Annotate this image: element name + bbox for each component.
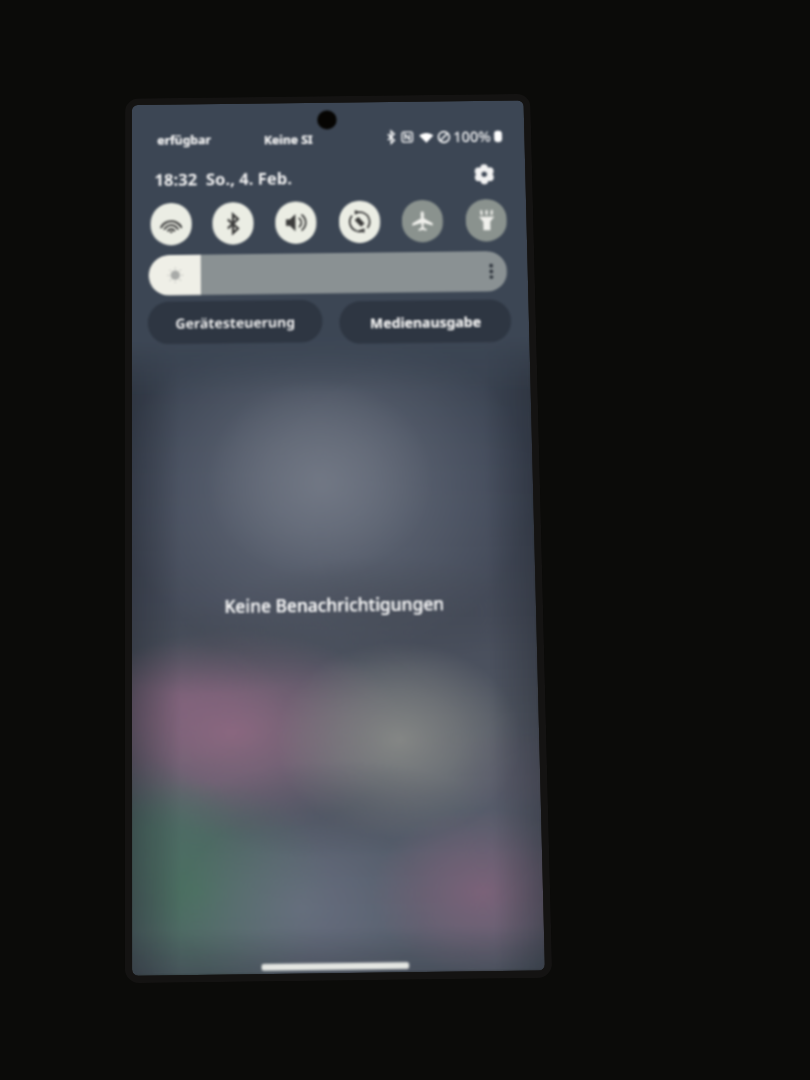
button[interactable]: Medienausgabe bbox=[339, 299, 512, 344]
button[interactable]: Flugmodus bbox=[401, 200, 443, 242]
button[interactable]: Bluetooth bbox=[212, 202, 254, 245]
button[interactable]: Gerätesteuerung bbox=[148, 300, 323, 345]
button[interactable]: Automatisch drehen bbox=[339, 200, 381, 243]
button[interactable]: Einstellungen bbox=[469, 160, 499, 189]
staticText: erfügbar bbox=[157, 132, 211, 149]
staticText: 18:32 So., 4. Feb. bbox=[154, 167, 293, 191]
staticText: Keine Benachrichtigungen bbox=[224, 592, 445, 619]
button[interactable]: Ton bbox=[275, 201, 317, 244]
button[interactable]: WLAN bbox=[150, 203, 192, 245]
staticText: Keine SI bbox=[264, 131, 314, 148]
button[interactable]: Helligkeit bbox=[149, 251, 507, 296]
staticText: Gerätesteuerung bbox=[175, 313, 296, 333]
staticText: Medienausgabe bbox=[370, 312, 482, 332]
button[interactable]: Taschenlampe bbox=[465, 199, 507, 242]
staticText: 100% bbox=[453, 126, 491, 146]
